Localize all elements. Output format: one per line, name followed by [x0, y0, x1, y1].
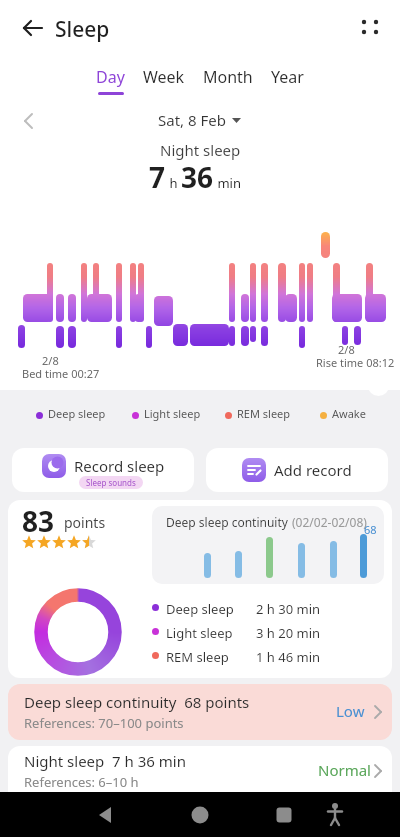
staticText: Add record [274, 460, 352, 480]
button[interactable] [8, 8, 48, 48]
staticText: Normal [318, 760, 371, 780]
staticText: Awake [332, 406, 366, 421]
staticText: Month [203, 66, 253, 88]
staticText: Night sleep [160, 140, 241, 160]
button[interactable]: 83 [8, 500, 392, 678]
button[interactable] [352, 10, 388, 46]
button[interactable]: Sat, 8 Feb [158, 110, 242, 130]
button[interactable] [315, 794, 355, 834]
staticText: Rise time 08:12 [316, 355, 395, 370]
staticText: Deep sleep [166, 600, 234, 618]
button[interactable] [85, 794, 125, 834]
staticText: 68 [364, 522, 377, 537]
button[interactable] [180, 794, 220, 834]
button[interactable]: Night sleep 7 h 36 min [8, 746, 392, 796]
staticText: 1 h 46 min [256, 648, 321, 666]
staticText: Week [143, 66, 185, 88]
staticText: Deep sleep continuity 68 points [24, 692, 250, 712]
staticText: Light sleep [144, 406, 201, 421]
button[interactable]: Deep sleep continuity 68 points [8, 684, 392, 740]
button[interactable]: Year [271, 66, 304, 95]
staticText: 83 [22, 502, 55, 540]
staticText: Day [96, 66, 125, 88]
staticText: Light sleep [166, 624, 233, 642]
staticText: Deep sleep continuity [166, 514, 292, 530]
staticText: Sleep [55, 15, 110, 44]
staticText: h [166, 174, 181, 192]
staticText: Bed time 00:27 [22, 366, 100, 381]
staticText: 7 [149, 158, 166, 196]
staticText: 2/8 [42, 353, 59, 368]
staticText: Low [336, 701, 365, 721]
staticText: References: 70–100 points [24, 714, 184, 732]
button[interactable]: Day [96, 66, 125, 95]
staticText: 36 [181, 158, 214, 196]
button[interactable]: Month [203, 66, 253, 95]
staticText: REM sleep [166, 648, 229, 666]
staticText: Year [271, 66, 304, 88]
staticText: References: 6–10 h [24, 773, 139, 791]
staticText: Sleep sounds [86, 477, 136, 488]
staticText: 2/8 [338, 342, 355, 357]
staticText: Sat, 8 Feb [158, 110, 226, 130]
staticText: Night sleep 7 h 36 min [24, 751, 186, 771]
staticText: REM sleep [237, 406, 291, 421]
staticText: Record sleep [74, 456, 165, 476]
staticText: points [64, 513, 106, 532]
button[interactable]: Add record [206, 448, 388, 492]
staticText: min [214, 174, 241, 192]
button[interactable] [264, 794, 304, 834]
staticText: 2 h 30 min [256, 600, 321, 618]
staticText: (02/02-02/08) [292, 514, 367, 530]
staticText: 3 h 20 min [256, 624, 321, 642]
button[interactable]: Week [143, 66, 185, 95]
staticText: Deep sleep [48, 406, 106, 421]
button[interactable]: Record sleep [12, 448, 194, 492]
